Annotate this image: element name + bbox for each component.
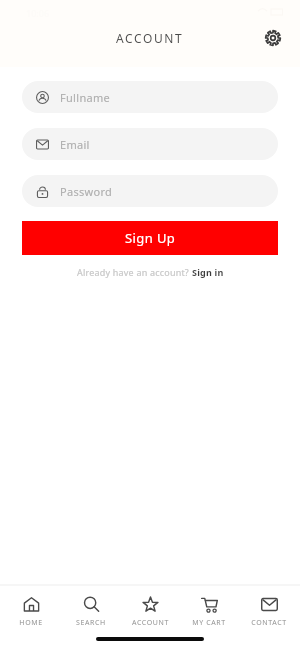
button[interactable]: ACCOUNT	[122, 594, 178, 630]
staticText: ACCOUNT	[116, 30, 184, 46]
staticText: Sign in	[192, 266, 224, 278]
button[interactable]: HOME	[3, 594, 59, 630]
button[interactable]: CONTACT	[241, 594, 297, 630]
button[interactable]: SEARCH	[63, 594, 119, 630]
button[interactable]: Email	[22, 128, 278, 160]
button[interactable]: Settings	[258, 23, 288, 53]
staticText: Password	[60, 184, 113, 199]
staticText: CONTACT	[251, 618, 287, 628]
button[interactable]: Fullname	[22, 81, 278, 113]
staticText: Fullname	[60, 90, 111, 105]
button[interactable]: Sign Up	[22, 221, 278, 255]
staticText: Sign Up	[125, 229, 176, 247]
button[interactable]: Password	[22, 175, 278, 207]
button[interactable]: Already have an account?	[0, 266, 300, 278]
staticText: Already have an account?	[77, 266, 192, 278]
button[interactable]: MY CART	[181, 594, 237, 630]
staticText: MY CART	[192, 618, 226, 628]
staticText: Email	[60, 137, 90, 152]
staticText: HOME	[19, 618, 43, 628]
staticText: SEARCH	[76, 618, 106, 628]
staticText: ACCOUNT	[132, 618, 169, 628]
